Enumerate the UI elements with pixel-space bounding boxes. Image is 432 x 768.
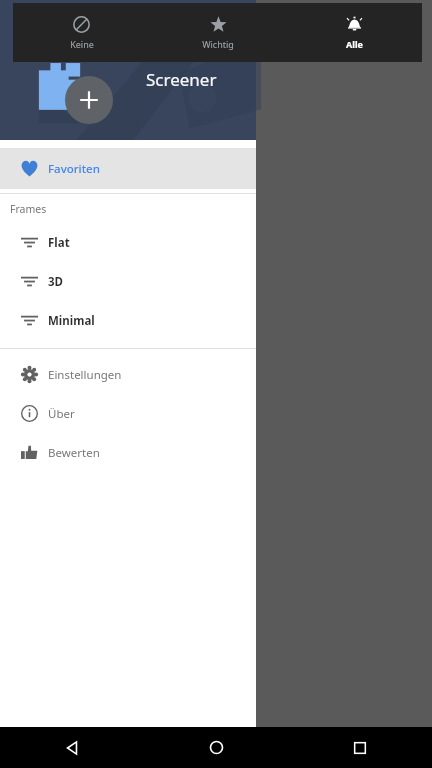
button[interactable]: Alle: [286, 3, 422, 62]
staticText: Alle: [346, 38, 363, 50]
button[interactable]: Add: [65, 76, 113, 124]
button[interactable]: Wichtig: [150, 3, 286, 62]
staticText: Minimal: [48, 313, 95, 329]
button[interactable]: Einstellungen: [0, 355, 256, 394]
button[interactable]: Über: [0, 394, 256, 433]
staticText: 3D: [48, 274, 63, 290]
staticText: Screener: [146, 68, 217, 91]
button[interactable]: Favoriten: [0, 148, 256, 189]
staticText: Frames: [10, 202, 47, 216]
button[interactable]: Back: [0, 727, 144, 768]
button[interactable]: Home: [144, 727, 288, 768]
staticText: Bewerten: [48, 445, 100, 461]
staticText: Einstellungen: [48, 367, 122, 383]
staticText: Über: [48, 406, 75, 422]
button[interactable]: Flat: [0, 223, 256, 262]
button[interactable]: Recents: [288, 727, 432, 768]
button[interactable]: 3D: [0, 262, 256, 301]
button[interactable]: Bewerten: [0, 433, 256, 472]
staticText: Favoriten: [48, 161, 100, 177]
staticText: Keine: [70, 38, 94, 50]
staticText: Wichtig: [202, 38, 234, 50]
staticText: Flat: [48, 235, 70, 251]
button[interactable]: Keine: [13, 3, 150, 62]
button[interactable]: Minimal: [0, 301, 256, 340]
